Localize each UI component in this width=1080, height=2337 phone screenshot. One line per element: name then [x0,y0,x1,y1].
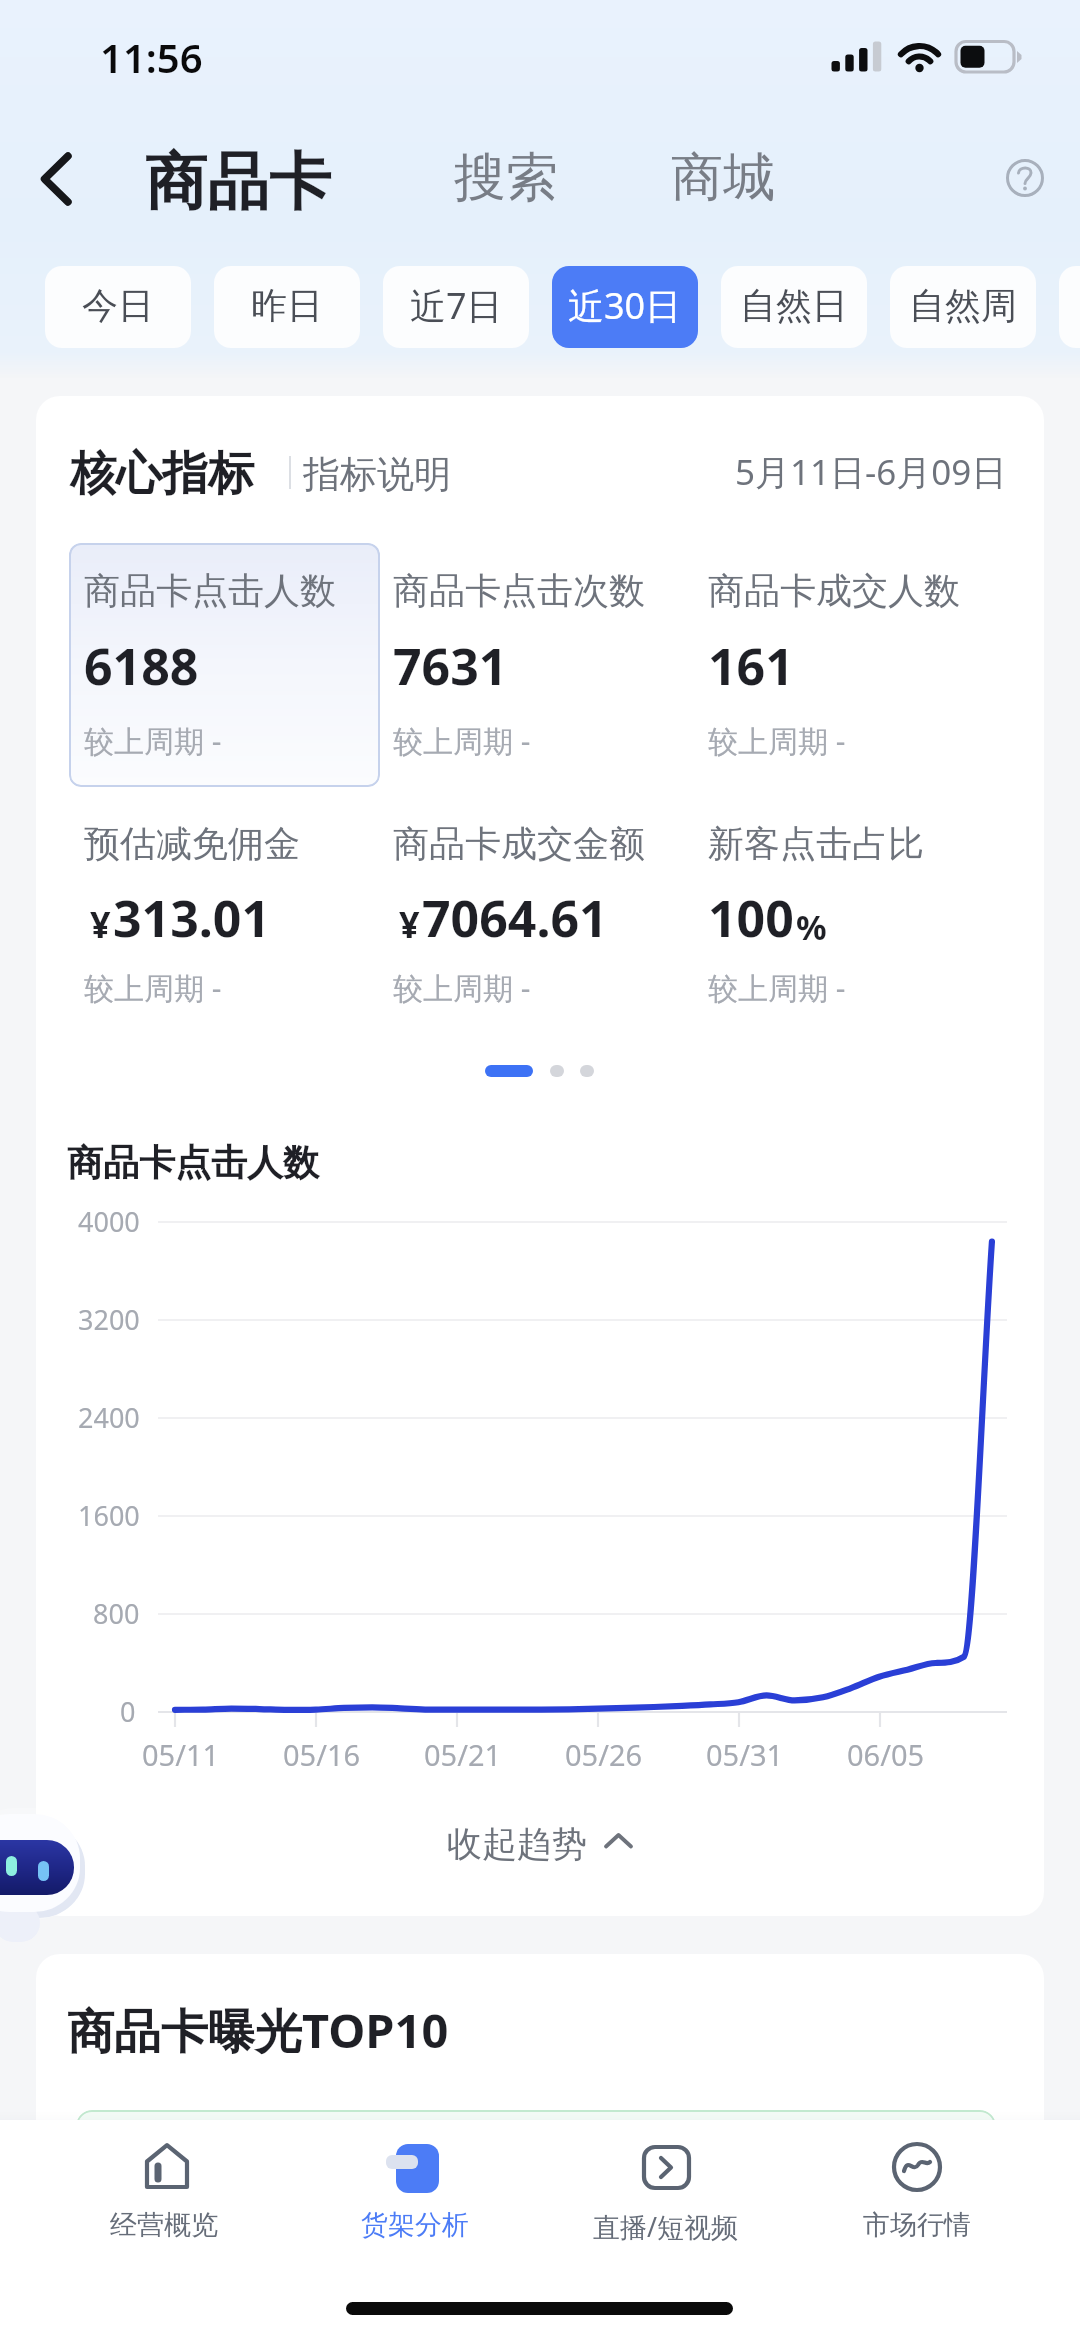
button[interactable]: 搜索 [430,127,582,229]
staticText: 800 [93,1595,140,1632]
button[interactable]: 自然周 [890,266,1036,348]
staticText: 近7日 [410,281,503,330]
staticText: 商品卡点击人数 [67,1140,319,1185]
staticText: 商品卡点击次数 [393,568,645,613]
staticText: 较上周期 - [393,967,531,1008]
staticText: % [796,904,827,950]
button[interactable]: 商品卡成交人数 [693,543,1004,787]
staticText: 自然日 [740,283,848,328]
staticText: ¥ [90,900,111,949]
staticText: 近30日 [568,281,682,330]
staticText: 较上周期 - [84,967,222,1008]
staticText: 313.01 [113,884,271,952]
button[interactable]: 昨日 [214,266,360,348]
staticText: 货架分析 [361,2208,469,2242]
button[interactable]: 货架分析 [290,2120,540,2270]
staticText: 06/05 [847,1735,925,1774]
staticText: 0 [120,1693,136,1730]
button[interactable]: 收起趋势 [414,1805,670,1875]
staticText: 100 [708,884,794,952]
staticText: 较上周期 - [393,720,531,761]
button[interactable]: 指标说明 [287,437,467,512]
staticText: 商品卡曝光TOP10 [67,1998,449,2062]
staticText: 05/26 [565,1735,643,1774]
staticText: 商品卡成交人数 [708,568,960,613]
staticText: 3200 [78,1301,140,1338]
staticText: 4000 [78,1203,140,1240]
staticText: 商品卡点击人数 [84,568,336,613]
button[interactable]: 自然月 [1059,266,1080,348]
button[interactable]: 今日 [45,266,191,348]
button[interactable]: 商品卡 [121,125,355,239]
button[interactable]: 新客点击占比 [693,795,1004,1039]
staticText: 今日 [82,283,154,328]
staticText: 直播/短视频 [593,2208,739,2245]
button[interactable]: 商品卡点击人数 [69,543,380,787]
staticText: 05/31 [706,1735,784,1774]
button[interactable]: 经营概览 [39,2120,289,2270]
staticText: 商品卡成交金额 [393,821,645,866]
staticText: 昨日 [251,283,323,328]
staticText: 核心指标 [70,445,254,503]
button[interactable]: 直播/短视频 [541,2120,791,2270]
staticText: 较上周期 - [708,967,846,1008]
staticText: 较上周期 - [84,720,222,761]
button[interactable]: 商品卡成交金额 [378,795,689,1039]
staticText: 经营概览 [110,2208,218,2242]
button[interactable]: 预估减免佣金 [69,795,380,1039]
staticText: 市场行情 [863,2208,971,2242]
staticText: 搜索 [454,145,558,211]
button[interactable]: 近7日 [383,266,529,348]
staticText: 05/21 [424,1735,502,1774]
staticText: 2400 [78,1399,140,1436]
staticText: 05/16 [283,1735,361,1774]
staticText: 6188 [84,632,199,700]
staticText: 自然周 [909,283,1017,328]
staticText: 较上周期 - [708,720,846,761]
staticText: 11:56 [100,30,203,84]
staticText: 5月11日-6月09日 [735,448,1007,496]
button[interactable]: 商城 [647,127,799,229]
button[interactable]: Back [16,140,94,218]
staticText: 7631 [393,632,508,700]
button[interactable]: Help [1000,153,1050,203]
button[interactable]: 自然日 [721,266,867,348]
staticText: 商品卡 [145,143,331,221]
staticText: 指标说明 [303,451,451,498]
staticText: 1600 [78,1497,140,1534]
button[interactable]: 商品卡点击次数 [378,543,689,787]
staticText: 新客点击占比 [708,821,924,866]
staticText: 商城 [671,145,775,211]
button[interactable]: 市场行情 [792,2120,1042,2270]
button[interactable]: 近30日 [552,266,698,348]
staticText: 161 [708,632,794,700]
staticText: 收起趋势 [447,1822,587,1866]
staticText: 预估减免佣金 [84,821,300,866]
staticText: ¥ [399,900,420,949]
staticText: 7064.61 [422,884,608,952]
staticText: 05/11 [142,1735,220,1774]
